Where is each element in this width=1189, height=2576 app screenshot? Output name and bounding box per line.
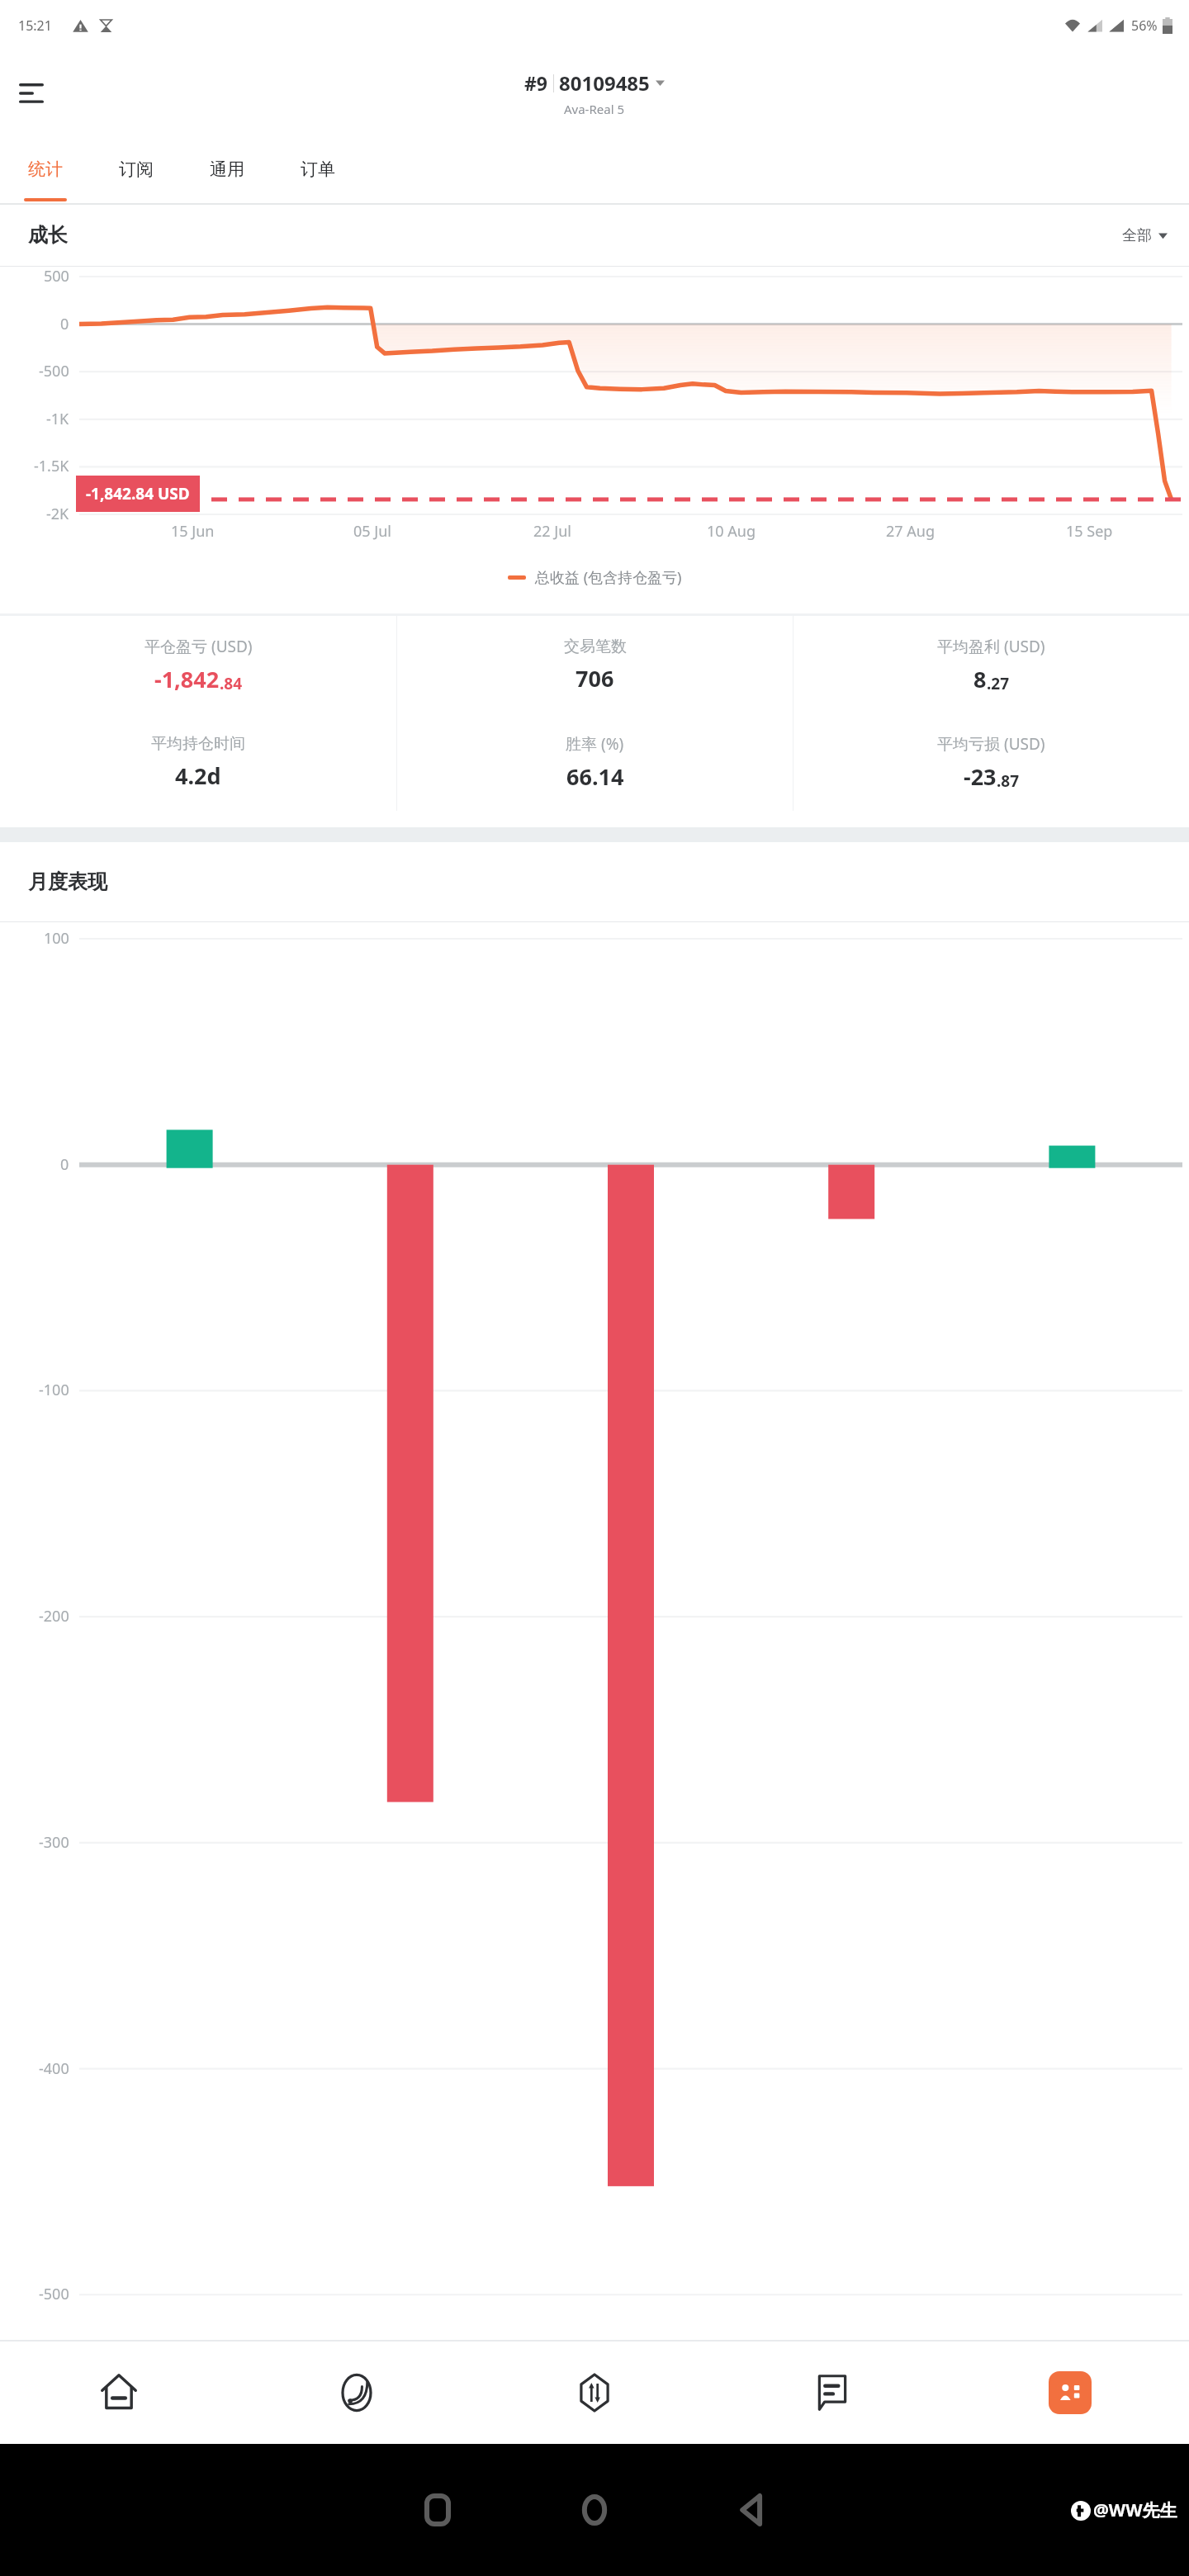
staticText: 成长 (28, 223, 68, 248)
button[interactable]: Chat (713, 2342, 951, 2444)
staticText: 统计 (28, 159, 63, 180)
staticText: 平均亏损 (USD) (937, 733, 1045, 755)
button[interactable]: 通用 (182, 135, 272, 203)
button[interactable]: Profile (1049, 2371, 1092, 2414)
button[interactable]: Home (0, 2342, 238, 2444)
button[interactable]: Back (726, 2484, 777, 2536)
staticText: 订阅 (119, 159, 154, 180)
staticText: .87 (997, 770, 1020, 792)
button[interactable]: 订阅 (91, 135, 182, 203)
staticText: -400 (39, 2058, 69, 2079)
staticText: 100 (44, 928, 69, 949)
button[interactable]: 胜率 (%) (397, 713, 793, 811)
staticText: 500 (44, 266, 69, 286)
staticText: 8 (973, 664, 987, 694)
staticText: .27 (987, 673, 1010, 694)
staticText: 4.2d (175, 760, 221, 791)
staticText: .84 (220, 673, 243, 694)
staticText: 10 Aug (707, 521, 756, 542)
staticText: 15:21 (18, 17, 52, 35)
staticText: -200 (39, 1606, 69, 1627)
staticText: 15 Jun (171, 521, 215, 542)
staticText: 0 (60, 1154, 69, 1175)
staticText: 平仓盈亏 (USD) (144, 636, 253, 657)
button[interactable]: 统计 (0, 135, 91, 203)
staticText: -300 (39, 1832, 69, 1853)
button[interactable]: 全部 (1122, 226, 1168, 245)
staticText: 交易笔数 (564, 637, 627, 656)
staticText: 通用 (210, 159, 244, 180)
button[interactable]: Home (569, 2484, 620, 2536)
button[interactable]: Recents (412, 2484, 463, 2536)
staticText: 平均盈利 (USD) (937, 636, 1045, 657)
button[interactable]: 平均亏损 (USD) (793, 713, 1189, 811)
staticText: -2K (46, 504, 69, 524)
button[interactable]: Signals (238, 2342, 476, 2444)
staticText: 56% (1131, 17, 1158, 35)
button[interactable]: Trade (476, 2342, 713, 2444)
staticText: 66.14 (566, 761, 624, 792)
button[interactable]: Menu (5, 67, 58, 120)
staticText: -1,842.84 USD (86, 483, 190, 504)
staticText: -1,842 (154, 664, 220, 694)
staticText: #9 (524, 70, 548, 96)
staticText: -1.5K (34, 456, 69, 476)
staticText: 月度表现 (28, 869, 107, 894)
staticText: @WW先生 (1093, 2498, 1177, 2522)
staticText: 胜率 (%) (566, 733, 624, 755)
button[interactable]: 平仓盈亏 (USD) (0, 616, 396, 713)
staticText: -500 (39, 361, 69, 381)
button[interactable]: 月度表现 (0, 842, 1189, 921)
staticText: 订单 (301, 159, 335, 180)
button[interactable]: #9 (524, 69, 665, 117)
staticText: 80109485 (559, 69, 650, 97)
staticText: 全部 (1122, 226, 1152, 245)
staticText: -100 (39, 1380, 69, 1400)
staticText: 总收益 (包含持仓盈亏) (535, 567, 682, 588)
staticText: 706 (576, 663, 614, 694)
staticText: -1K (46, 409, 69, 429)
staticText: -500 (39, 2284, 69, 2304)
button[interactable]: 平均持仓时间 (0, 713, 396, 811)
staticText: 05 Jul (353, 521, 391, 542)
button[interactable]: 成长 (0, 205, 1189, 266)
button[interactable]: 交易笔数 (397, 616, 793, 713)
staticText: 27 Aug (886, 521, 935, 542)
button[interactable]: 平均盈利 (USD) (793, 616, 1189, 713)
staticText: -23 (964, 761, 997, 792)
staticText: 平均持仓时间 (151, 734, 245, 754)
staticText: Ava-Real 5 (564, 101, 625, 117)
button[interactable]: 订单 (272, 135, 363, 203)
staticText: 15 Sep (1066, 521, 1113, 542)
staticText: 22 Jul (533, 521, 571, 542)
staticText: 0 (60, 314, 69, 334)
